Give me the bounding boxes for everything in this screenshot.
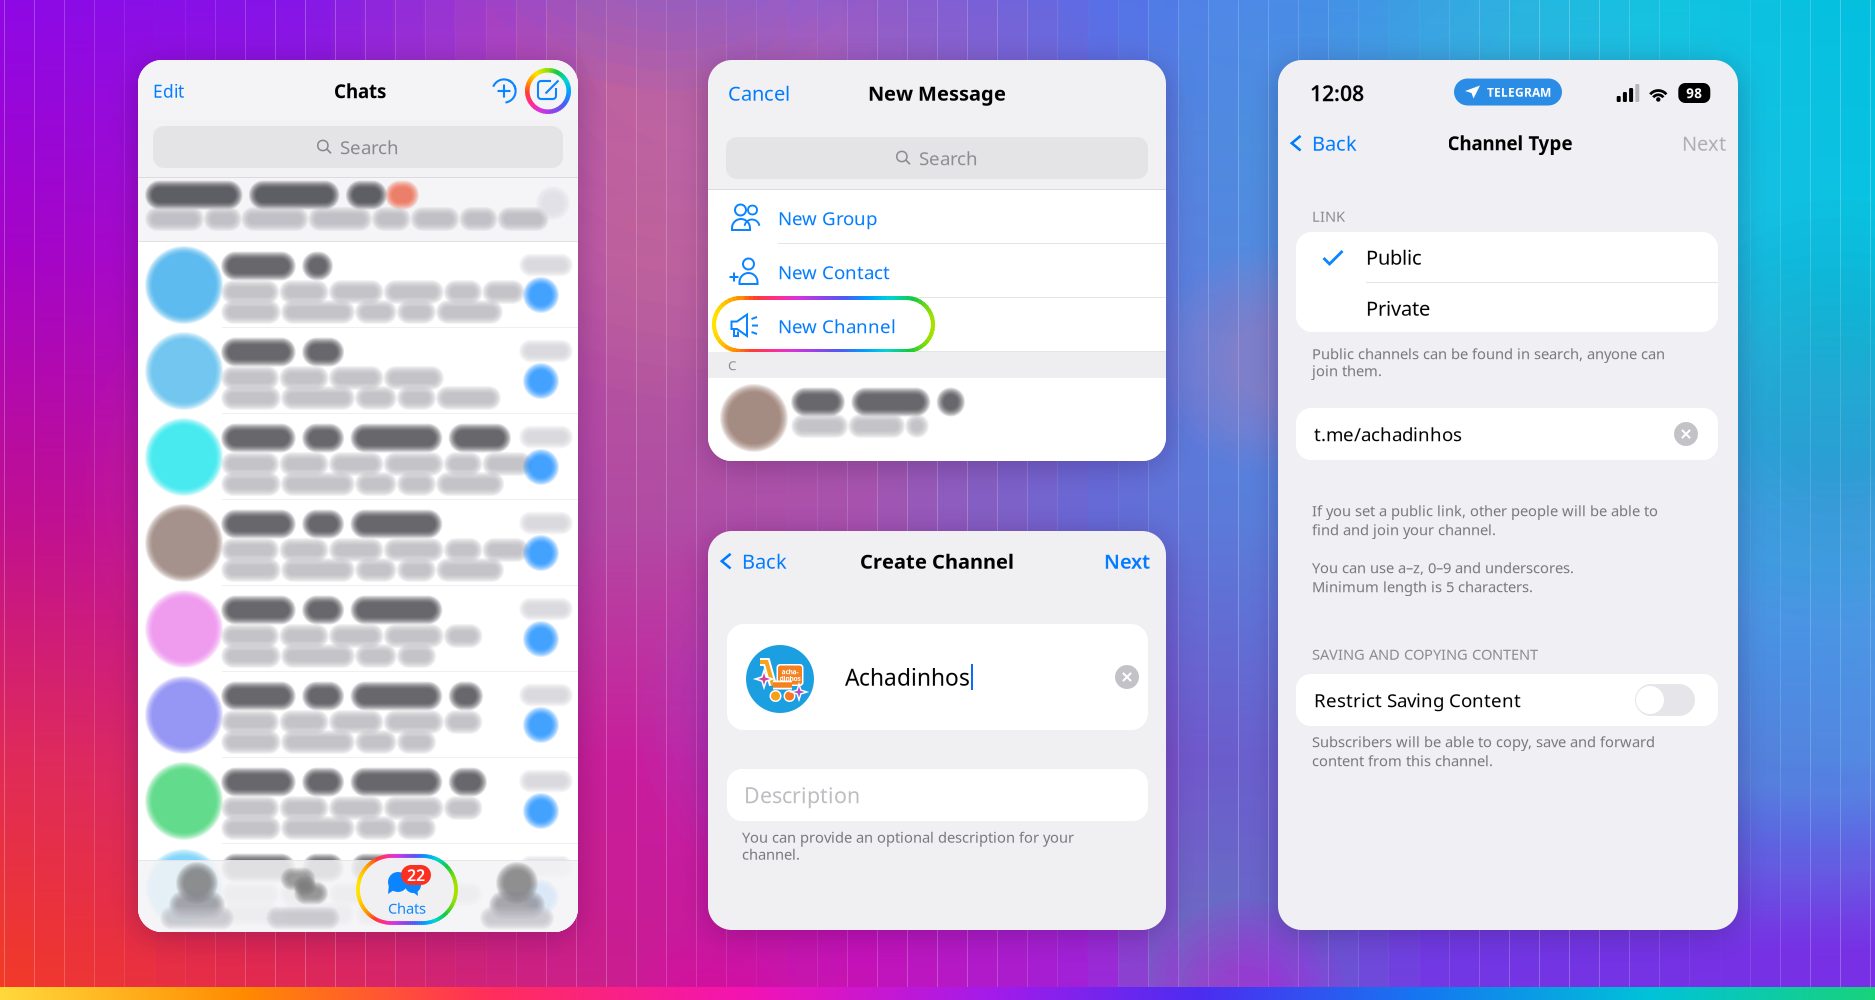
staticText: LINK bbox=[1312, 206, 1345, 226]
button[interactable]: Back bbox=[1288, 126, 1418, 160]
staticText: content from this channel. bbox=[1312, 751, 1493, 770]
staticText: Public channels can be found in search, … bbox=[1312, 344, 1665, 363]
button[interactable]: Settings bbox=[476, 864, 558, 926]
button[interactable]: Private bbox=[1296, 283, 1718, 332]
button[interactable]: New message bbox=[534, 77, 562, 105]
button[interactable]: Public bbox=[1296, 232, 1718, 282]
staticText: Restrict Saving Content bbox=[1314, 688, 1521, 712]
staticText: Achadinhos bbox=[845, 662, 970, 692]
button[interactable]: Contacts bbox=[156, 864, 238, 926]
staticText: New Contact bbox=[778, 260, 890, 284]
staticText: Chats bbox=[388, 898, 426, 918]
staticText: Next bbox=[1104, 548, 1150, 574]
button[interactable]: Next bbox=[1650, 127, 1726, 159]
staticText: Subscribers will be able to copy, save a… bbox=[1312, 732, 1655, 751]
button[interactable]: Restrict Saving Content bbox=[1296, 674, 1718, 726]
staticText: SAVING AND COPYING CONTENT bbox=[1312, 644, 1538, 664]
staticText: New Message bbox=[868, 80, 1006, 106]
button[interactable]: New Channel bbox=[708, 298, 1166, 352]
staticText: New Channel bbox=[778, 314, 896, 338]
staticText: 12:08 bbox=[1310, 79, 1364, 107]
staticText: If you set a public link, other people w… bbox=[1312, 501, 1658, 520]
staticText: Description bbox=[744, 781, 860, 809]
button[interactable]: Calls bbox=[262, 864, 344, 926]
staticText: Cancel bbox=[728, 80, 790, 106]
button[interactable]: Clear link bbox=[1674, 422, 1698, 446]
staticText: Minimum length is 5 characters. bbox=[1312, 577, 1533, 596]
button[interactable]: Cancel bbox=[728, 78, 848, 108]
staticText: Search bbox=[340, 135, 399, 159]
staticText: join them. bbox=[1312, 361, 1382, 380]
staticText: dinhos bbox=[779, 674, 800, 683]
staticText: Search bbox=[919, 146, 978, 170]
staticText: Next bbox=[1682, 130, 1726, 156]
staticText: acha- bbox=[781, 667, 798, 676]
staticText: channel. bbox=[742, 844, 800, 864]
button[interactable]: New Group bbox=[708, 190, 1166, 244]
staticText: find and join your channel. bbox=[1312, 520, 1496, 539]
staticText: New Group bbox=[778, 206, 877, 230]
button[interactable]: Back bbox=[718, 545, 848, 577]
staticText: 22 bbox=[407, 864, 425, 886]
staticText: Back bbox=[742, 548, 787, 574]
staticText: Chats bbox=[334, 79, 386, 103]
staticText: You can provide an optional description … bbox=[742, 827, 1074, 847]
staticText: Back bbox=[1312, 130, 1357, 156]
button[interactable]: Edit bbox=[153, 77, 223, 105]
staticText: C bbox=[728, 356, 736, 374]
staticText: Edit bbox=[153, 79, 184, 102]
staticText: TELEGRAM bbox=[1487, 84, 1551, 100]
staticText: t.me/achadinhos bbox=[1314, 422, 1462, 446]
staticText: You can use a–z, 0–9 and underscores. bbox=[1312, 558, 1574, 577]
staticText: Public bbox=[1366, 244, 1422, 270]
button[interactable]: New Contact bbox=[708, 244, 1166, 298]
staticText: Channel Type bbox=[1447, 131, 1572, 155]
button[interactable]: Clear name bbox=[1115, 665, 1139, 689]
staticText: Private bbox=[1366, 295, 1430, 321]
button[interactable]: New group bbox=[490, 77, 518, 105]
staticText: Create Channel bbox=[860, 548, 1014, 574]
staticText: 98 bbox=[1686, 84, 1702, 102]
button[interactable]: Next bbox=[1076, 546, 1150, 576]
button[interactable]: 22 bbox=[358, 856, 456, 923]
